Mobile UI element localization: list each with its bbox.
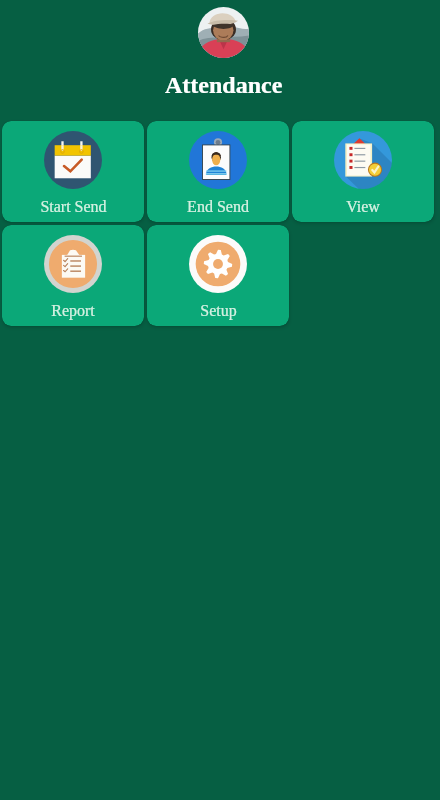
staticText: Start Send — [40, 198, 107, 216]
staticText: View — [346, 198, 380, 216]
button[interactable]: Setup — [147, 225, 289, 326]
button[interactable]: Report — [2, 225, 144, 326]
staticText: End Send — [187, 198, 249, 216]
button[interactable]: Start Send — [2, 121, 144, 222]
button[interactable]: End Send — [147, 121, 289, 222]
button[interactable]: Profile photo — [198, 7, 249, 58]
button[interactable]: View — [292, 121, 434, 222]
staticText: Report — [51, 302, 95, 320]
staticText: Attendance — [165, 72, 283, 99]
staticText: Setup — [200, 302, 237, 320]
